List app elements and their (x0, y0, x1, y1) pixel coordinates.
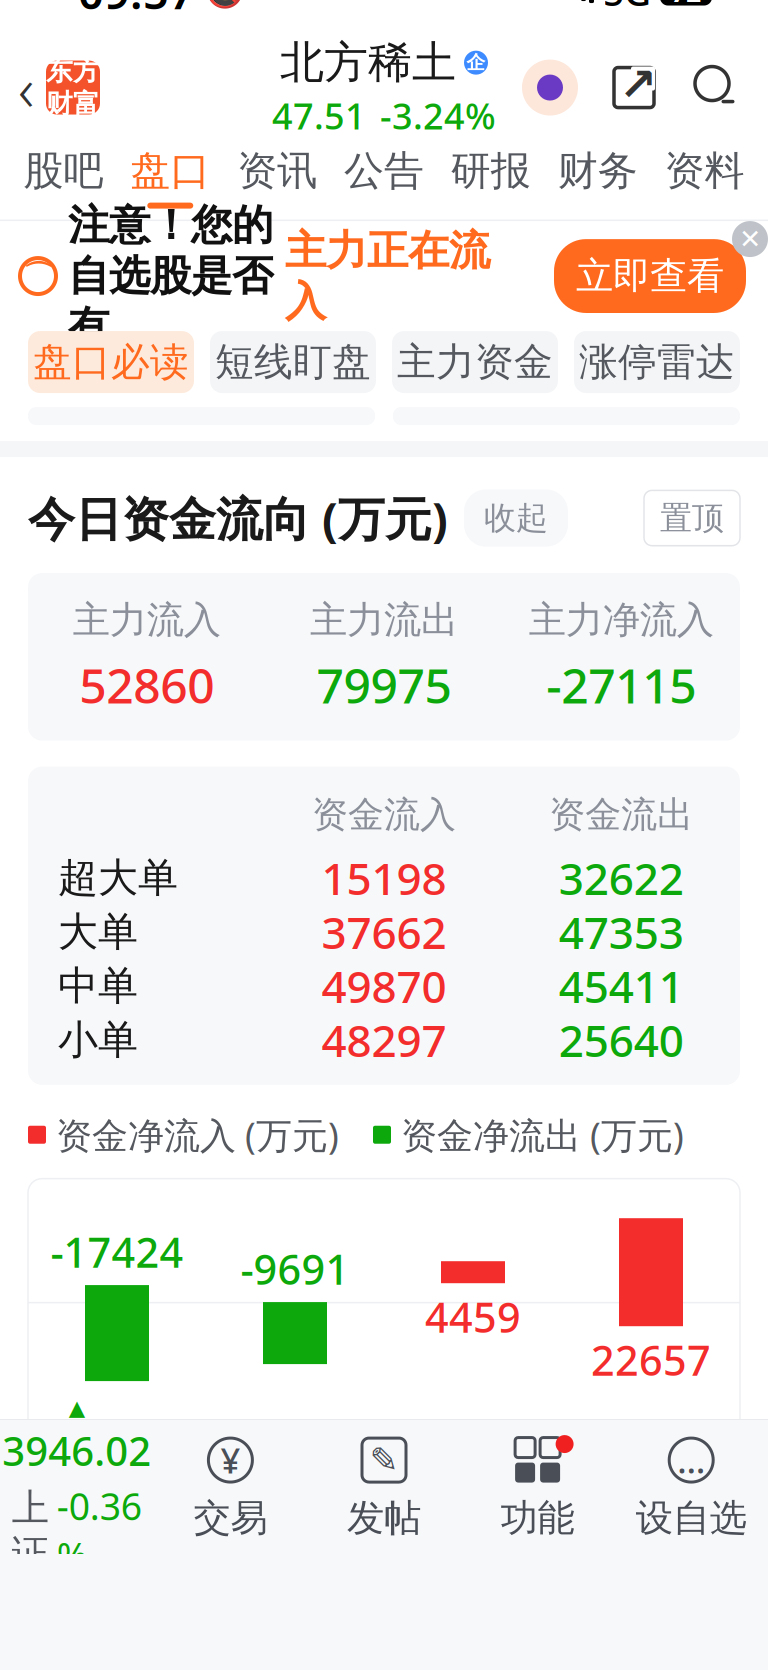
button[interactable]: 分享 (608, 62, 660, 114)
staticText: ▲ (69, 1396, 85, 1420)
staticText: 财富 (46, 88, 100, 120)
staticText: 注意！您的自选股是否有 (68, 200, 273, 352)
staticText: ⌒ (23, 258, 52, 294)
staticText: 52860 (79, 653, 214, 717)
button[interactable]: 资讯 (224, 136, 331, 220)
staticText: 5G (603, 0, 651, 16)
button[interactable]: 搜索 (690, 62, 742, 114)
staticText: 资讯 (237, 146, 317, 196)
staticText: … (677, 1437, 705, 1483)
button[interactable]: 财务 (544, 136, 651, 220)
staticText: -27115 (546, 653, 696, 717)
staticText: ↗ (619, 59, 657, 110)
button[interactable]: … (614, 1435, 768, 1541)
staticText: 09:57 (78, 0, 195, 22)
button[interactable]: 短线盯盘 (210, 331, 376, 393)
staticText: 47353 (559, 903, 684, 961)
button[interactable]: ¥ (154, 1435, 307, 1541)
staticText: ✎ (369, 1440, 398, 1480)
staticText: 设自选 (636, 1495, 747, 1541)
staticText: 主力资金 (397, 338, 553, 386)
staticText: 资金净流出 (万元) (401, 1111, 684, 1159)
staticText: 净中单 (417, 1447, 528, 1492)
staticText: 盘口必读 (33, 338, 189, 386)
staticText: 资金净流入 (万元) (56, 1111, 339, 1159)
staticText: 大单 (58, 907, 138, 956)
button[interactable]: ▲ (0, 1396, 154, 1580)
staticText: 4459 (425, 1289, 521, 1344)
staticText: 资金流出 (549, 793, 693, 837)
staticText: 超大单 (58, 853, 178, 902)
button[interactable]: 盘口 (117, 136, 224, 220)
staticText: 企 (466, 51, 485, 74)
staticText: 东方 (46, 55, 100, 88)
staticText: -0.36% (57, 1481, 142, 1580)
button[interactable]: 主力资金 (392, 331, 558, 393)
button[interactable]: 公告 (331, 136, 437, 220)
staticText: 48297 (321, 1011, 446, 1069)
staticText: 中单 (58, 961, 138, 1010)
staticText: 发帖 (347, 1495, 421, 1541)
button[interactable]: ✎ (307, 1435, 461, 1541)
button[interactable]: 资料 (651, 136, 758, 220)
staticText: -9691 (240, 1241, 349, 1296)
staticText: 主力流入 (73, 597, 221, 643)
staticText: 47.51 (272, 92, 366, 139)
staticText: 主力流出 (310, 597, 458, 643)
button[interactable]: 返回 东方财富 (0, 47, 100, 128)
staticText: 交易 (193, 1495, 267, 1541)
button[interactable]: 盘口必读 (28, 331, 194, 393)
staticText: 25640 (559, 1011, 684, 1069)
button[interactable]: 功能 (461, 1435, 614, 1541)
staticText: 72 (671, 0, 701, 9)
staticText: -3.24% (380, 92, 496, 139)
staticText: 主力正在流入 (285, 225, 490, 327)
staticText: 收起 (484, 498, 548, 538)
staticText: 涨停雷达 (579, 338, 735, 386)
staticText: 净大单 (239, 1447, 350, 1492)
staticText: 45411 (559, 957, 684, 1015)
staticText: 32622 (559, 849, 684, 907)
staticText: 79975 (316, 653, 451, 717)
staticText: 37662 (321, 903, 446, 961)
staticText: 资料 (665, 146, 745, 196)
button[interactable]: 收起 (464, 489, 568, 547)
staticText: 功能 (501, 1495, 575, 1541)
button[interactable]: 置顶 (644, 490, 740, 546)
staticText: 15198 (321, 849, 446, 907)
staticText: ✕ (739, 224, 761, 254)
staticText: 资金流入 (312, 793, 456, 837)
staticText: 股吧 (23, 146, 103, 196)
staticText: 研报 (451, 146, 531, 196)
button[interactable]: 关闭 (732, 221, 768, 257)
staticText: 🔕 (205, 0, 245, 10)
staticText: 公告 (344, 146, 424, 196)
button[interactable]: 研报 (437, 136, 544, 220)
staticText: 主力净流入 (529, 597, 714, 643)
staticText: 上证 (12, 1485, 49, 1576)
staticText: 22657 (591, 1332, 711, 1387)
button[interactable]: 股吧 (10, 136, 117, 220)
staticText: 3946.02 (2, 1424, 151, 1477)
staticText: 49870 (321, 957, 446, 1015)
staticText: -17424 (50, 1224, 183, 1279)
button[interactable]: 立即查看 (554, 239, 746, 313)
staticText: 置顶 (660, 498, 724, 538)
staticText: 净超大 (61, 1447, 172, 1492)
staticText: ‹ (18, 47, 34, 128)
staticText: 净小单 (595, 1447, 706, 1492)
staticText: 今日资金流向 (万元) (28, 487, 448, 549)
button[interactable]: 智能助手 (522, 60, 578, 116)
staticText: 立即查看 (576, 253, 724, 299)
staticText: 财务 (558, 146, 638, 196)
button[interactable]: 涨停雷达 (574, 331, 740, 393)
staticText: 北方稀土 (280, 36, 456, 90)
staticText: ¥ (220, 1437, 240, 1483)
staticText: 短线盯盘 (215, 338, 371, 386)
